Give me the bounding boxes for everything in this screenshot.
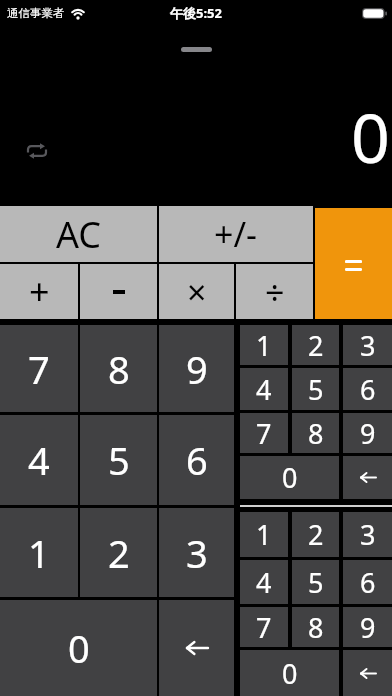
staticText: 6 xyxy=(186,434,208,486)
button[interactable]: 6 xyxy=(343,560,392,604)
staticText: 5 xyxy=(308,371,324,408)
button[interactable]: AC xyxy=(0,206,157,262)
button[interactable]: +/- xyxy=(159,206,313,262)
staticText: 0 xyxy=(68,622,90,674)
button[interactable]: 0 xyxy=(240,456,339,499)
staticText: 通信事業者 xyxy=(7,6,65,20)
button[interactable]: 0 xyxy=(240,650,339,696)
staticText: 4 xyxy=(28,434,50,486)
staticText: ÷ xyxy=(265,269,285,315)
button[interactable]: 7 xyxy=(240,413,288,453)
button[interactable]: 9 xyxy=(343,413,392,453)
staticText: 3 xyxy=(360,327,376,364)
button[interactable] xyxy=(315,208,392,319)
button[interactable]: 6 xyxy=(159,415,234,505)
button[interactable] xyxy=(26,143,48,159)
button[interactable]: 8 xyxy=(292,413,339,453)
staticText: 2 xyxy=(108,527,130,579)
staticText: 7 xyxy=(28,343,50,395)
button[interactable]: 3 xyxy=(343,512,392,557)
button[interactable]: 0 xyxy=(0,600,157,696)
button[interactable]: ÷ xyxy=(236,264,313,319)
button[interactable]: 1 xyxy=(0,508,78,597)
staticText: 5 xyxy=(108,434,130,486)
staticText: 7 xyxy=(256,609,272,646)
staticText: 午後5:52 xyxy=(170,4,222,22)
staticText: 8 xyxy=(308,609,324,646)
staticText: 5 xyxy=(308,564,324,601)
staticText: 1 xyxy=(256,516,272,553)
button[interactable]: 9 xyxy=(343,607,392,647)
button[interactable]: 6 xyxy=(343,368,392,410)
staticText: 1 xyxy=(256,327,272,364)
button[interactable]: 1 xyxy=(240,512,288,557)
staticText: + xyxy=(29,267,50,316)
staticText: AC xyxy=(56,210,102,259)
button[interactable]: 8 xyxy=(80,325,157,412)
staticText: 7 xyxy=(256,415,272,452)
staticText: 9 xyxy=(186,343,208,395)
staticText: 2 xyxy=(308,327,324,364)
button[interactable]: 7 xyxy=(240,607,288,647)
button[interactable]: 5 xyxy=(292,560,339,604)
button[interactable]: 9 xyxy=(159,325,234,412)
button[interactable]: 2 xyxy=(292,325,339,365)
staticText: 6 xyxy=(360,371,376,408)
button[interactable]: 3 xyxy=(159,508,234,597)
button[interactable] xyxy=(343,650,392,696)
button[interactable]: 5 xyxy=(292,368,339,410)
staticText: 3 xyxy=(360,516,376,553)
staticText: 6 xyxy=(360,564,376,601)
staticText: +/- xyxy=(214,211,258,257)
staticText: 4 xyxy=(256,564,272,601)
staticText: 8 xyxy=(308,415,324,452)
button[interactable]: 1 xyxy=(240,325,288,365)
button[interactable]: 3 xyxy=(343,325,392,365)
button[interactable]: 4 xyxy=(240,368,288,410)
staticText: 4 xyxy=(256,371,272,408)
staticText: 9 xyxy=(360,609,376,646)
button[interactable]: + xyxy=(0,264,78,319)
button[interactable]: 7 xyxy=(0,325,78,412)
button[interactable] xyxy=(159,600,234,696)
button[interactable]: × xyxy=(159,264,234,319)
staticText: 3 xyxy=(186,527,208,579)
staticText: 2 xyxy=(308,516,324,553)
button[interactable] xyxy=(343,456,392,499)
button[interactable]: 4 xyxy=(240,560,288,604)
button[interactable]: 4 xyxy=(0,415,78,505)
staticText: 1 xyxy=(28,527,50,579)
button[interactable]: 2 xyxy=(292,512,339,557)
button[interactable]: 5 xyxy=(80,415,157,505)
button[interactable]: 8 xyxy=(292,607,339,647)
staticText: 8 xyxy=(108,343,130,395)
button[interactable]: 2 xyxy=(80,508,157,597)
button[interactable] xyxy=(80,264,157,319)
staticText: 0 xyxy=(282,459,298,496)
staticText: × xyxy=(187,269,207,315)
staticText: 0 xyxy=(282,655,298,692)
staticText: 9 xyxy=(360,415,376,452)
staticText: 0 xyxy=(351,90,390,183)
